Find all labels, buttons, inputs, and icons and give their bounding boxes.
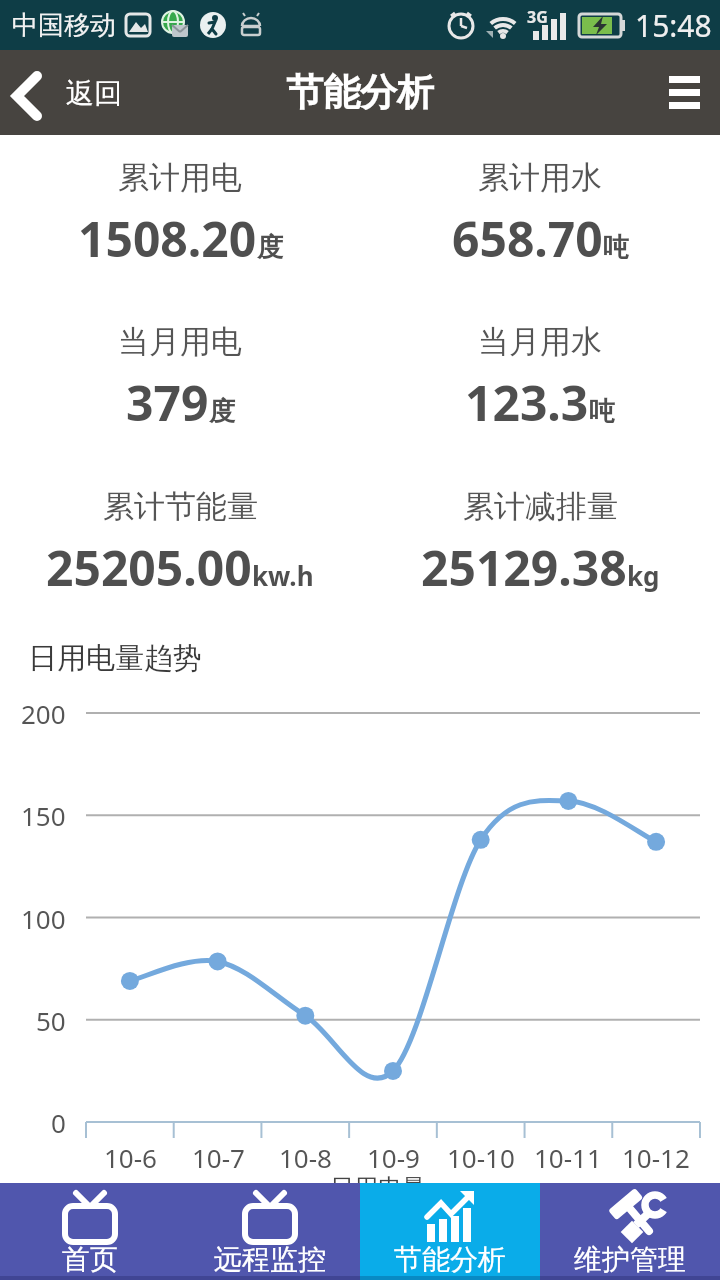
staticText: 首页 — [62, 1242, 118, 1277]
staticText: 10-12 — [622, 1140, 690, 1175]
staticText: 当月用电 — [118, 322, 242, 361]
staticText: 658.70 — [452, 206, 603, 271]
staticText: 379 — [126, 370, 209, 435]
staticText: 200 — [21, 696, 66, 731]
staticText: 10-7 — [192, 1140, 245, 1175]
staticText: 123.3 — [465, 370, 589, 435]
staticText: 度 — [209, 395, 235, 428]
staticText: 返回 — [66, 76, 122, 111]
staticText: 25129.38 — [421, 535, 627, 600]
button[interactable]: 节能分析 — [360, 1183, 540, 1280]
staticText: 中国移动 — [12, 9, 116, 42]
staticText: kw.h — [252, 558, 314, 593]
staticText: 10-10 — [447, 1140, 515, 1175]
staticText: 吨 — [603, 231, 629, 264]
staticText: 1508.20 — [78, 206, 257, 271]
staticText: 累计用电 — [118, 158, 242, 197]
staticText: 当月用水 — [478, 322, 602, 361]
staticText: 累计用水 — [478, 158, 602, 197]
staticText: 3G — [527, 6, 548, 28]
staticText: 维护管理 — [574, 1242, 686, 1277]
staticText: 节能分析 — [394, 1242, 506, 1277]
staticText: 日用电量趋势 — [28, 640, 202, 677]
staticText: 累计节能量 — [103, 487, 258, 526]
staticText: 度 — [257, 231, 283, 264]
staticText: 10-9 — [367, 1140, 420, 1175]
staticText: kg — [627, 558, 660, 593]
staticText: 100 — [21, 901, 66, 936]
staticText: 10-8 — [279, 1140, 332, 1175]
staticText: 0 — [51, 1105, 66, 1140]
staticText: 吨 — [589, 395, 615, 428]
staticText: 节能分析 — [286, 69, 434, 116]
staticText: 10-11 — [534, 1140, 602, 1175]
staticText: 150 — [21, 798, 66, 833]
staticText: 15:48 — [635, 5, 712, 46]
staticText: 远程监控 — [214, 1242, 326, 1277]
button[interactable] — [669, 76, 700, 109]
staticText: 25205.00 — [46, 535, 252, 600]
button[interactable]: 返回 — [0, 71, 122, 115]
button[interactable]: 维护管理 — [540, 1183, 720, 1280]
staticText: 日用电量 — [330, 1173, 426, 1203]
button[interactable]: 远程监控 — [180, 1183, 360, 1280]
button[interactable]: 首页 — [0, 1183, 180, 1280]
staticText: 50 — [36, 1003, 66, 1038]
staticText: 10-6 — [104, 1140, 157, 1175]
staticText: 累计减排量 — [463, 487, 618, 526]
